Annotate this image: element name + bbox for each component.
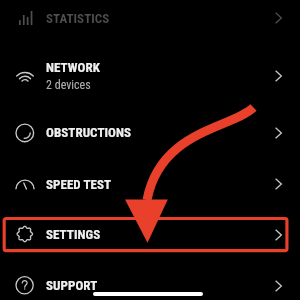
button[interactable]: STATISTICS: [0, 0, 300, 40]
staticText: STATISTICS: [46, 11, 110, 26]
staticText: NETWORK: [46, 60, 100, 75]
button[interactable]: OBSTRUCTIONS: [0, 107, 300, 159]
button[interactable]: SUPPORT: [0, 262, 300, 300]
staticText: 2 devices: [46, 78, 91, 92]
button[interactable]: SETTINGS: [0, 212, 300, 260]
other: OBSTRUCTIONS: [271, 126, 285, 140]
other: SPEED TEST: [271, 177, 285, 191]
other: SETTINGS: [271, 228, 285, 242]
other: SUPPORT: [271, 279, 285, 293]
button[interactable]: SPEED TEST: [0, 160, 300, 212]
staticText: SETTINGS: [46, 227, 101, 242]
other: STATISTICS: [271, 11, 285, 25]
button[interactable]: NETWORK: [0, 46, 300, 106]
staticText: SPEED TEST: [46, 177, 112, 192]
other: NETWORK: [271, 69, 285, 83]
staticText: SUPPORT: [46, 278, 98, 293]
staticText: OBSTRUCTIONS: [46, 125, 132, 140]
